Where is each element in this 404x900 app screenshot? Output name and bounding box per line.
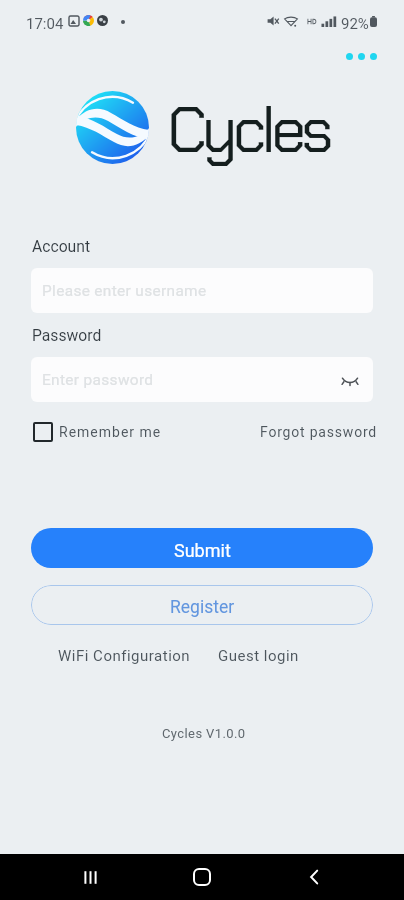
button[interactable]: Recents (66, 854, 114, 900)
button[interactable]: Submit (31, 528, 373, 568)
button[interactable]: WiFi Configuration (58, 647, 191, 665)
staticText: Remember me (59, 424, 162, 440)
staticText: Register (170, 597, 235, 618)
button[interactable]: Register (31, 585, 373, 625)
staticText: 92% (341, 15, 369, 33)
button[interactable]: Remember me (33, 422, 162, 442)
button[interactable]: Enter password (31, 357, 373, 402)
staticText: Cycles (167, 90, 329, 172)
staticText: HD (307, 18, 317, 26)
button[interactable]: Back (290, 854, 338, 900)
button[interactable]: Please enter username (31, 268, 373, 313)
button[interactable]: Show password (337, 367, 363, 393)
button[interactable]: More options (344, 51, 379, 62)
staticText: Submit (174, 540, 231, 561)
staticText: Cycles V1.0.0 (162, 726, 246, 741)
staticText: Password (32, 326, 102, 344)
staticText: WiFi Configuration (58, 647, 191, 665)
button[interactable]: Forgot password (254, 422, 378, 442)
staticText: Please enter username (42, 282, 207, 300)
staticText: Forgot password (260, 424, 378, 440)
staticText: Enter password (42, 371, 154, 389)
staticText: 17:04 (26, 15, 64, 33)
button[interactable]: Home (178, 854, 226, 900)
staticText: Guest login (218, 647, 299, 665)
button[interactable]: Guest login (218, 647, 299, 665)
staticText: Account (32, 237, 91, 255)
